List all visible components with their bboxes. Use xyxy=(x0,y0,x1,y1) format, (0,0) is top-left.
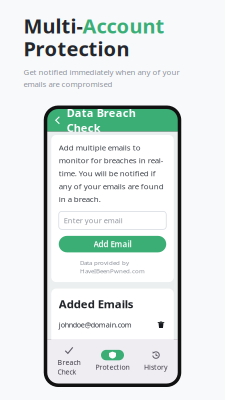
staticText: Data Breach Check xyxy=(67,105,136,135)
button[interactable]: Breach Check xyxy=(47,343,91,378)
staticText: Data provided by HaveIBeenPwned.com xyxy=(80,258,145,275)
button[interactable]: History xyxy=(134,348,178,374)
staticText: Protection xyxy=(95,362,129,372)
button[interactable]: Delete johndoe@domain.com xyxy=(156,319,166,330)
button[interactable]: Delete janedoe@domain.com xyxy=(156,342,166,352)
button[interactable]: Protection xyxy=(91,348,134,374)
button[interactable]: Back xyxy=(53,114,62,127)
staticText: Multi- xyxy=(23,12,82,39)
staticText: Account xyxy=(82,12,164,39)
staticText: Add multiple emails to monitor for breac… xyxy=(59,142,164,204)
staticText: Breach Check xyxy=(57,358,80,376)
staticText: johndoe@domain.com xyxy=(59,320,132,330)
staticText: Added Emails xyxy=(59,296,134,311)
staticText: Add Email xyxy=(93,239,131,250)
staticText: janedoe@domain.com xyxy=(59,342,132,352)
staticText: Protection xyxy=(23,35,129,62)
staticText: History xyxy=(144,362,168,372)
staticText: Enter your email xyxy=(64,215,123,225)
staticText: Get notified immediately when any of you… xyxy=(23,67,179,89)
button[interactable]: Add Email xyxy=(59,236,166,252)
